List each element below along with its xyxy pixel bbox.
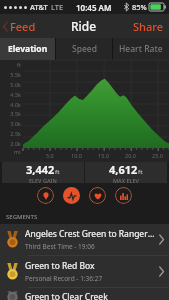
staticText: 4.5k — [10, 91, 21, 98]
staticText: 85% — [132, 2, 147, 12]
button[interactable]: Analysis — [115, 187, 132, 204]
staticText: Third Best Time - 19:06 — [25, 242, 95, 251]
button[interactable]: Elevation — [63, 187, 80, 204]
staticText: Ride — [71, 18, 97, 34]
button[interactable]: Heart rate — [89, 187, 106, 204]
staticText: 3,442 — [26, 162, 55, 177]
button[interactable]: Green to Clear Creek — [0, 288, 169, 300]
button[interactable]: Speed — [56, 38, 112, 60]
staticText: Green to Red Box — [25, 260, 95, 272]
staticText: Share — [133, 19, 163, 34]
staticText: 5.5k — [10, 71, 21, 78]
staticText: ft — [55, 168, 60, 176]
staticText: Green to Clear Creek — [25, 291, 108, 300]
staticText: AT&T — [30, 2, 48, 12]
staticText: ELEV GAIN — [29, 177, 57, 183]
staticText: Personal Record - 1:36:27 — [25, 274, 103, 283]
staticText: 2.0k — [10, 140, 21, 147]
staticText: 10.0 — [71, 152, 82, 159]
other: Open segment — [159, 235, 164, 244]
staticText: 15.0 — [98, 152, 109, 159]
staticText: Heart Rate — [119, 43, 163, 55]
button[interactable]: Green to Red Box — [0, 256, 169, 287]
staticText: 4,612 — [109, 162, 138, 177]
staticText: Speed — [72, 43, 97, 55]
button[interactable]: Angeles Crest Green to Ranger St... — [0, 224, 169, 255]
button[interactable]: Share — [127, 14, 169, 38]
staticText: 3.5k — [10, 110, 21, 117]
staticText: 4.0k — [10, 101, 21, 108]
staticText: 25.0 — [152, 152, 163, 159]
staticText: Elevation — [8, 43, 48, 55]
button[interactable]: 4,612 — [85, 162, 167, 183]
staticText: ft — [138, 168, 143, 176]
staticText: LTE — [51, 2, 64, 12]
button[interactable]: 3,442 — [2, 162, 84, 183]
staticText: 5.0k — [10, 81, 21, 88]
staticText: 20.0 — [125, 152, 136, 159]
button[interactable]: Back — [0, 14, 42, 38]
staticText: MAX ELEV — [113, 177, 139, 183]
staticText: ft — [17, 61, 21, 68]
staticText: mi — [14, 148, 21, 155]
staticText: Feed — [10, 19, 36, 34]
staticText: SEGMENTS — [6, 213, 38, 221]
button[interactable]: Elevation — [0, 38, 55, 60]
other: Back — [3, 22, 8, 31]
button[interactable]: Map — [37, 187, 54, 204]
staticText: 5.0 — [46, 152, 54, 159]
button[interactable]: Heart Rate — [113, 38, 169, 60]
other: Open segment — [159, 267, 164, 276]
staticText: 3.0k — [10, 120, 21, 127]
staticText: Angeles Crest Green to Ranger St... — [25, 228, 156, 240]
staticText: 10:45 AM — [76, 2, 112, 13]
staticText: 2.5k — [10, 130, 21, 137]
